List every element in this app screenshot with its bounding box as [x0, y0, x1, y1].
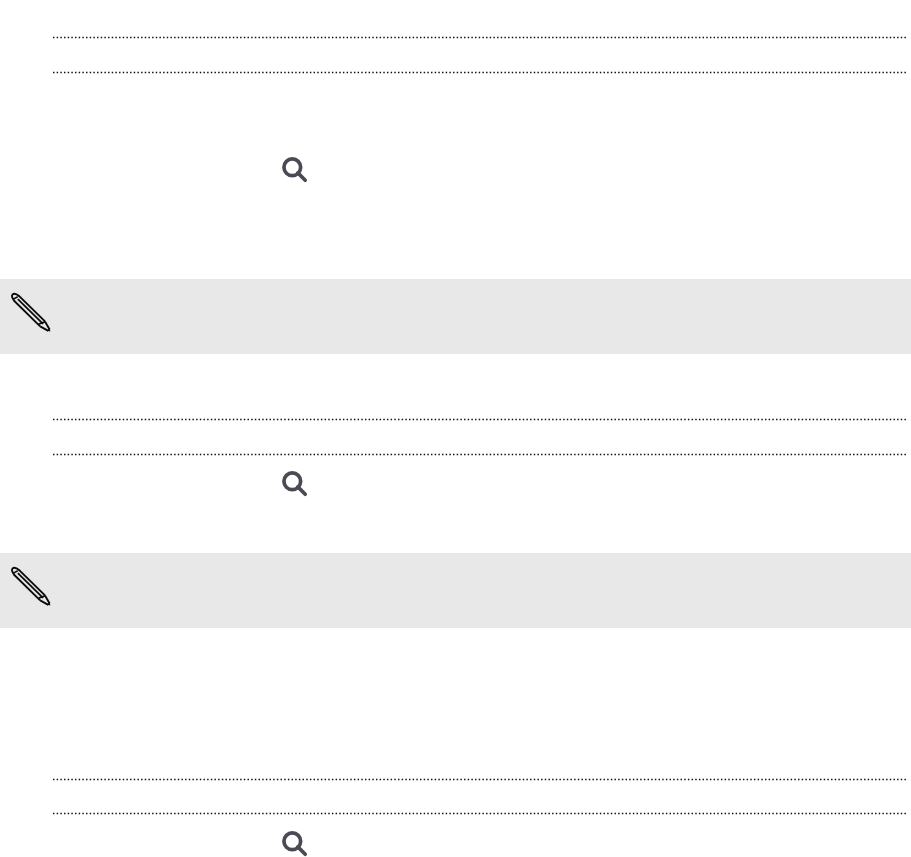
button[interactable]: Search — [282, 831, 308, 857]
button[interactable]: Topic link — [0, 445, 911, 464]
button[interactable]: Note — [0, 279, 911, 354]
button[interactable]: Note — [0, 553, 911, 628]
button[interactable]: Topic link — [0, 410, 911, 429]
button[interactable]: Topic link — [0, 770, 911, 789]
button[interactable]: Search — [282, 157, 308, 183]
button[interactable]: Topic link — [0, 63, 911, 82]
button[interactable]: Search — [282, 471, 308, 497]
button[interactable]: Topic link — [0, 804, 911, 823]
button[interactable]: Topic link — [0, 28, 911, 47]
